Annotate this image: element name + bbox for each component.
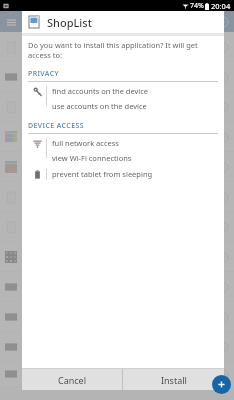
button[interactable]: Install (123, 369, 224, 390)
staticText: prevent tablet from sleeping (52, 169, 153, 179)
staticText: view Wi-Fi connections (52, 153, 132, 163)
button[interactable]: Item options (215, 219, 231, 235)
button[interactable]: Cancel (22, 369, 122, 390)
staticText: DEVICE ACCESS (28, 121, 84, 131)
button[interactable]: Item options (215, 39, 231, 55)
staticText: Install (161, 374, 187, 386)
staticText: 20:04 (211, 1, 231, 11)
button[interactable]: More options (216, 15, 230, 29)
button[interactable]: Item options (215, 159, 231, 175)
button[interactable]: Open navigation drawer (4, 15, 18, 29)
button[interactable]: Item options (215, 69, 231, 85)
staticText: use accounts on the device (52, 101, 147, 111)
button[interactable]: Item options (215, 99, 231, 115)
staticText: full network access (52, 138, 119, 148)
staticText: Do you want to install this application?… (28, 40, 218, 60)
staticText: 74% (190, 1, 204, 11)
staticText: find accounts on the device (52, 86, 149, 96)
button[interactable]: Item options (215, 249, 231, 265)
button[interactable]: Item options (215, 309, 231, 325)
button[interactable]: Item options (215, 339, 231, 355)
button[interactable]: Item options (215, 366, 231, 382)
button[interactable]: Item options (215, 129, 231, 145)
staticText: Cancel (58, 374, 87, 386)
button[interactable]: Item options (215, 189, 231, 205)
button[interactable]: Add item (212, 375, 231, 394)
staticText: PRIVACY (28, 69, 59, 79)
button[interactable]: Item options (215, 279, 231, 295)
staticText: ShopList (47, 15, 92, 30)
